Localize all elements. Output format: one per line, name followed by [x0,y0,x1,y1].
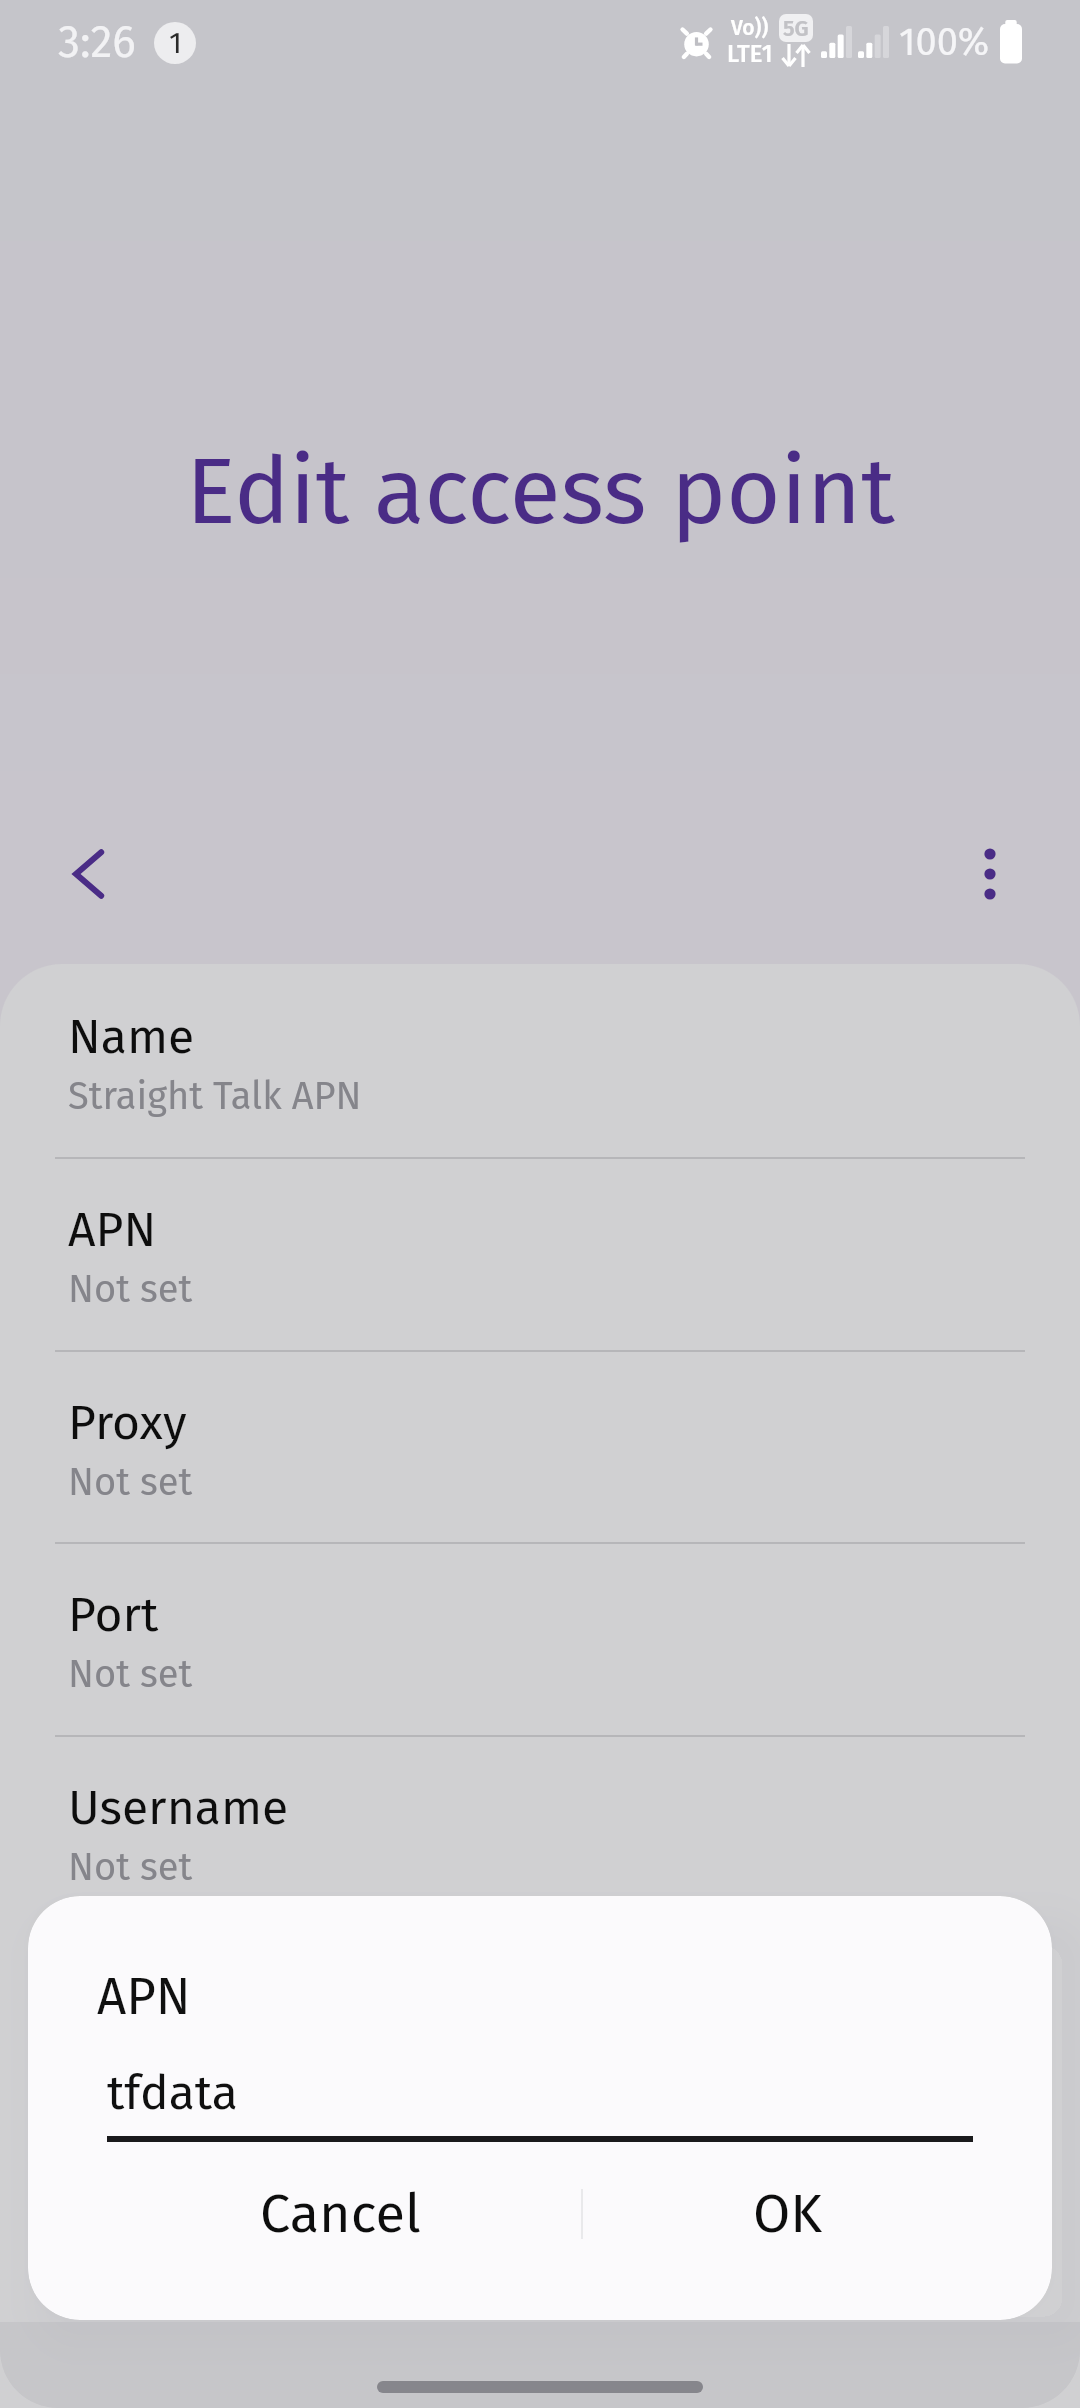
button[interactable]: Proxy [0,1350,1080,1542]
staticText: Straight Talk APN [68,1073,362,1119]
button[interactable]: Cancel [100,2154,581,2274]
staticText: Not set [68,1844,193,1890]
staticText: Not set [68,1459,193,1505]
staticText: Edit access point [186,436,895,548]
button[interactable]: Navigate up [38,822,142,926]
staticText: Proxy [68,1394,187,1452]
staticText: OK [753,2182,823,2247]
staticText: Password [68,1972,272,2030]
button[interactable]: Username [0,1735,1080,1928]
staticText: 5G [783,15,809,41]
button[interactable]: Password [0,1928,1080,2121]
staticText: Name [68,1008,195,1066]
button[interactable]: Port [0,1542,1080,1735]
button[interactable]: OK [583,2154,992,2274]
staticText: Username [68,1779,289,1837]
staticText: Port [68,1586,159,1644]
button[interactable]: More options [938,822,1042,926]
button[interactable]: Name [0,964,1080,1157]
staticText: 1 [169,25,182,61]
staticText: Not set [68,1651,193,1697]
staticText: 100% [899,19,990,65]
staticText: 3:26 [58,16,136,69]
staticText: Vo)) [731,15,769,40]
staticText: APN [68,1201,157,1259]
staticText: Cancel [260,2182,421,2247]
staticText: LTE1 [727,40,773,69]
button[interactable]: APN [0,1157,1080,1350]
staticText: Not set [68,2037,193,2083]
staticText: Not set [68,1266,193,1312]
staticText: tfdata [107,2064,238,2122]
staticText: APN [97,1966,191,2027]
